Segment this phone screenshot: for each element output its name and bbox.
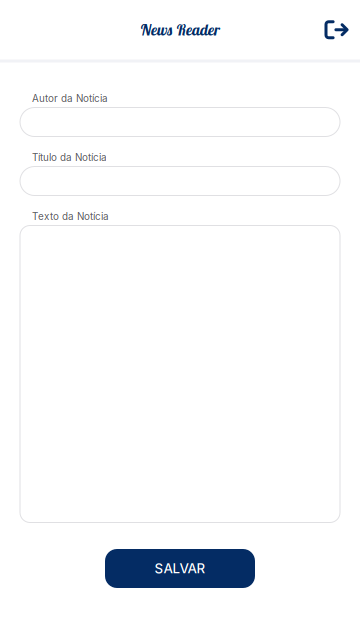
staticText: Autor da Notícia: [32, 93, 108, 104]
staticText: Título da Notícia: [32, 152, 107, 163]
staticText: SALVAR: [154, 560, 205, 576]
staticText: News Reader: [140, 20, 220, 39]
staticText: Texto da Notícia: [32, 211, 109, 222]
button[interactable]: SALVAR: [105, 549, 255, 588]
button[interactable]: Logout: [318, 12, 354, 48]
